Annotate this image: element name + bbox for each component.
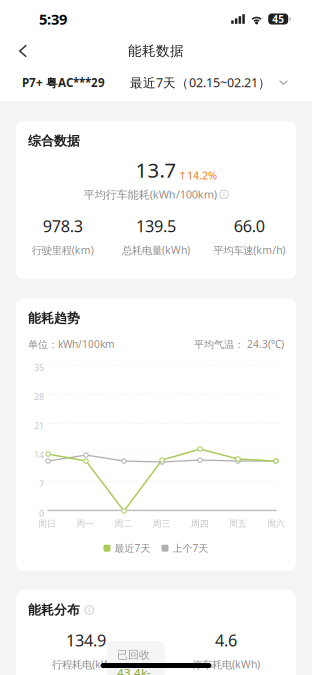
staticText: 能耗分布 xyxy=(28,602,80,618)
staticText: 周六 xyxy=(267,518,285,529)
staticText: 综合数据 xyxy=(28,133,80,149)
staticText: 周三 xyxy=(152,518,170,529)
staticText: 单位：kWh/100km xyxy=(28,337,114,351)
staticText: 43.4kWh xyxy=(117,665,151,675)
staticText: 周日 xyxy=(38,518,56,529)
staticText: 周五 xyxy=(229,518,247,529)
staticText: 能耗趋势 xyxy=(28,310,80,326)
staticText: 平均气温： 24.3(°C) xyxy=(194,337,284,351)
staticText: 0 xyxy=(39,507,44,519)
staticText: 978.3 xyxy=(43,215,83,237)
staticText: 14 xyxy=(34,449,44,461)
staticText: 能耗数据 xyxy=(128,42,184,59)
staticText: 平均行车能耗(kWh/100km) xyxy=(84,187,217,202)
staticText: 66.0 xyxy=(234,215,265,237)
staticText: 平均车速(km/h) xyxy=(213,243,285,257)
staticText: 已回收 xyxy=(117,648,150,662)
staticText: 最近7天（02.15~02.21） xyxy=(130,74,271,91)
staticText: 13.7 xyxy=(135,156,176,184)
staticText: 28 xyxy=(34,390,44,402)
staticText: 行程耗电(kWh) xyxy=(52,657,120,671)
staticText: 停车耗电(kWh) xyxy=(192,657,260,671)
staticText: P7+ 粤AC***29 xyxy=(22,75,105,90)
staticText: 周二 xyxy=(114,518,132,529)
staticText: 139.5 xyxy=(136,215,176,237)
staticText: 45 xyxy=(272,12,284,26)
button[interactable]: Back xyxy=(5,38,41,64)
staticText: 35 xyxy=(34,361,44,373)
staticText: 行驶里程(km) xyxy=(32,243,94,257)
staticText: 4.6 xyxy=(215,629,237,651)
staticText: ↑14.2% xyxy=(178,168,217,183)
staticText: 周一 xyxy=(76,518,94,529)
button[interactable]: 最近7天（02.15~02.21） xyxy=(130,74,288,91)
staticText: 21 xyxy=(34,419,44,432)
staticText: 上个7天 xyxy=(172,541,208,555)
staticText: 周四 xyxy=(191,518,209,529)
staticText: 最近7天 xyxy=(114,541,150,555)
staticText: 134.9 xyxy=(66,629,106,651)
staticText: 5:39 xyxy=(39,9,67,29)
button[interactable]: P7+ 粤AC***29 xyxy=(22,75,105,90)
staticText: 7 xyxy=(39,478,44,490)
staticText: 总耗电量(kWh) xyxy=(122,243,190,257)
